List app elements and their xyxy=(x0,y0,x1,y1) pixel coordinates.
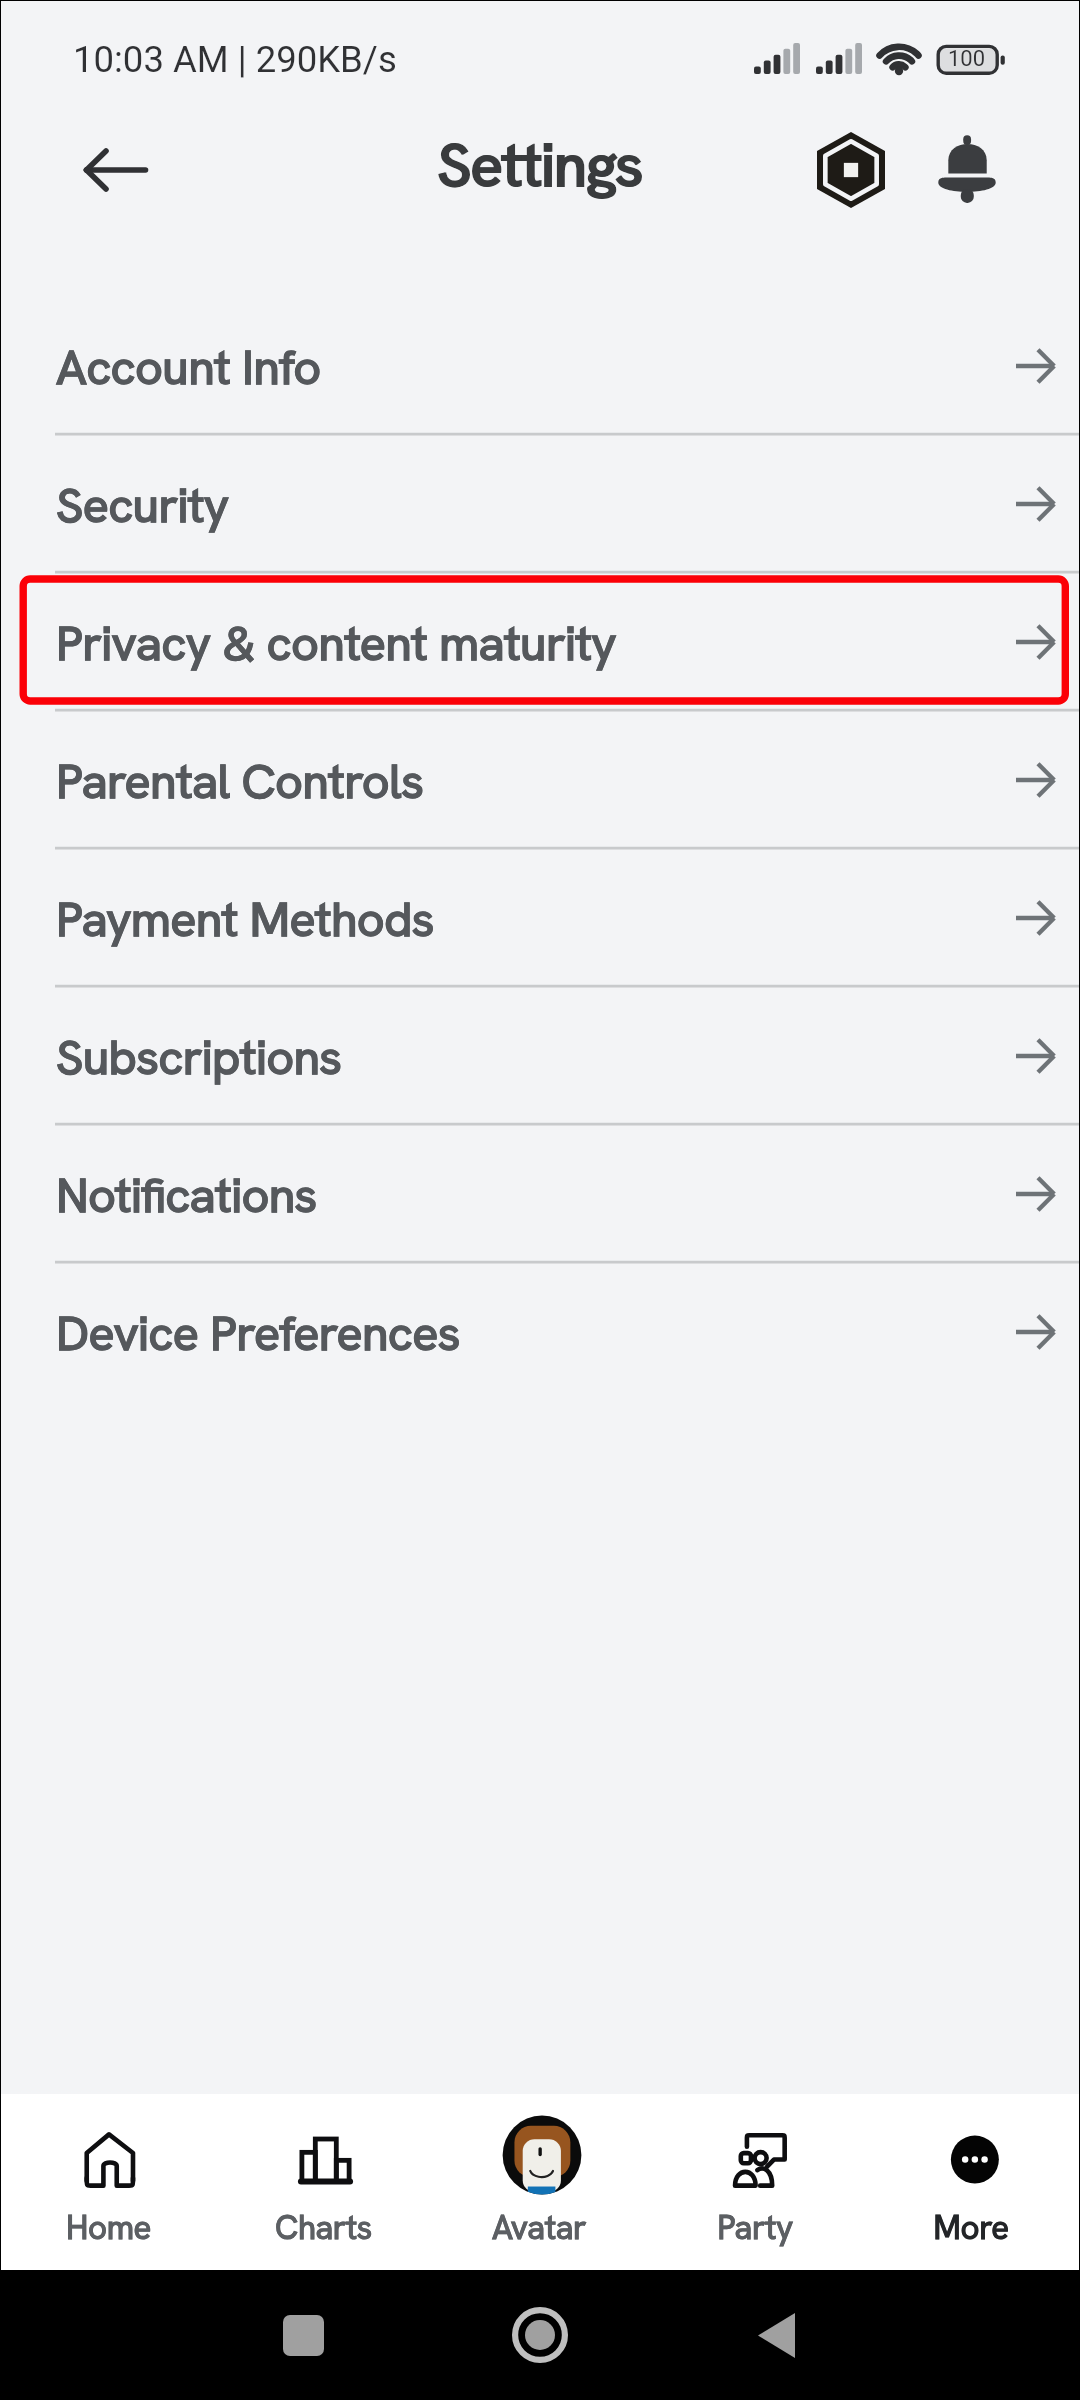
staticText: Security xyxy=(56,473,229,536)
button[interactable]: Back xyxy=(731,2290,821,2380)
staticText: Notifications xyxy=(56,1163,317,1226)
staticText: Settings xyxy=(438,126,644,204)
staticText: Security xyxy=(56,473,229,536)
staticText: Privacy & content maturity xyxy=(56,611,616,674)
button[interactable]: Home xyxy=(495,2290,585,2380)
button[interactable]: Recents xyxy=(258,2290,348,2380)
staticText: Notifications xyxy=(56,1163,317,1226)
staticText: Account Info xyxy=(56,335,321,398)
staticText: Settings xyxy=(437,126,643,204)
staticText: 100 xyxy=(948,46,986,72)
button[interactable]: Privacy & content maturity xyxy=(1,573,1079,711)
staticText: Privacy & content maturity xyxy=(56,611,616,674)
staticText: Party xyxy=(717,2206,793,2249)
staticText: Payment Methods xyxy=(56,887,434,950)
button[interactable]: Notifications xyxy=(1,1125,1079,1263)
button[interactable]: Parental Controls xyxy=(1,711,1079,849)
button[interactable]: Subscriptions xyxy=(1,987,1079,1125)
button[interactable]: Security xyxy=(1,435,1079,573)
staticText: Avatar xyxy=(492,2206,586,2249)
staticText: Payment Methods xyxy=(56,887,434,950)
button[interactable]: Back xyxy=(68,122,164,218)
button[interactable]: Party xyxy=(647,2094,863,2270)
staticText: Device Preferences xyxy=(56,1301,460,1364)
staticText: Subscriptions xyxy=(56,1025,342,1088)
staticText: Device Preferences xyxy=(56,1301,460,1364)
button[interactable]: Robux xyxy=(803,122,899,218)
staticText: Party xyxy=(717,2206,793,2249)
staticText: Parental Controls xyxy=(56,749,424,812)
staticText: Account Info xyxy=(56,335,321,398)
staticText: Subscriptions xyxy=(56,1025,342,1088)
staticText: 10:03 AM | 290KB/s xyxy=(73,38,397,81)
staticText: More xyxy=(933,2206,1009,2249)
staticText: Home xyxy=(66,2206,151,2249)
staticText: Charts xyxy=(275,2206,372,2249)
button[interactable]: Notifications xyxy=(919,122,1015,218)
staticText: More xyxy=(933,2206,1009,2249)
staticText: Home xyxy=(66,2206,151,2249)
button[interactable]: More xyxy=(863,2094,1079,2270)
button[interactable]: Avatar xyxy=(431,2094,647,2270)
button[interactable]: Account Info xyxy=(1,297,1079,435)
button[interactable]: Payment Methods xyxy=(1,849,1079,987)
button[interactable]: Home xyxy=(1,2094,216,2270)
button[interactable]: Device Preferences xyxy=(1,1263,1079,1401)
button[interactable]: Charts xyxy=(216,2094,431,2270)
staticText: Charts xyxy=(275,2206,372,2249)
staticText: Parental Controls xyxy=(56,749,424,812)
staticText: Avatar xyxy=(492,2206,586,2249)
